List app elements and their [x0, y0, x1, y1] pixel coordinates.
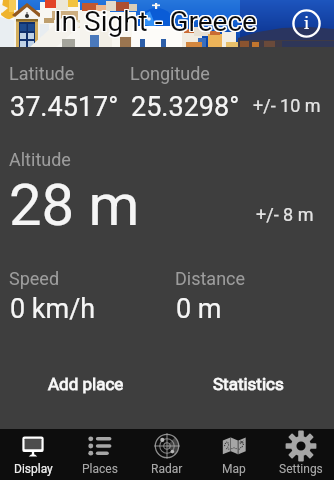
staticText: i — [304, 12, 310, 34]
staticText: In Sight - Greece — [54, 5, 257, 38]
button[interactable]: Statistics — [167, 368, 330, 400]
staticText: In Sight - Greece — [54, 4, 257, 37]
staticText: Settings — [279, 462, 323, 476]
button[interactable]: Places — [66, 429, 133, 480]
staticText: 28 m — [9, 171, 140, 239]
staticText: Latitude — [9, 63, 75, 84]
staticText: +/- 8 m — [256, 204, 314, 225]
button[interactable]: Radar — [133, 429, 200, 480]
button[interactable]: Info — [292, 9, 321, 38]
staticText: +/- 10 m — [253, 95, 321, 116]
staticText: 0 m — [176, 293, 222, 325]
staticText: Distance — [175, 268, 246, 289]
staticText: In Sight - Greece — [55, 6, 258, 39]
button[interactable]: Map — [200, 429, 267, 480]
staticText: 0 km/h — [10, 293, 96, 325]
staticText: In Sight - Greece — [55, 5, 258, 38]
staticText: 37.4517° — [10, 91, 119, 123]
button[interactable]: Display — [0, 429, 66, 480]
staticText: Altitude — [9, 149, 71, 170]
staticText: In Sight - Greece — [53, 6, 256, 39]
staticText: Add place — [48, 374, 124, 394]
staticText: Places — [82, 462, 118, 476]
staticText: Statistics — [213, 374, 284, 394]
staticText: Longitude — [130, 63, 210, 84]
staticText: In Sight - Greece — [54, 6, 257, 39]
staticText: In Sight - Greece — [55, 4, 258, 37]
staticText: Speed — [9, 268, 60, 289]
staticText: In Sight - Greece — [53, 4, 256, 37]
staticText: Radar — [151, 462, 183, 476]
staticText: In Sight - Greece — [53, 5, 256, 38]
button[interactable]: Settings — [267, 429, 334, 480]
staticText: 25.3298° — [131, 91, 240, 123]
button[interactable]: Add place — [4, 368, 167, 400]
staticText: Map — [222, 462, 246, 476]
staticText: Display — [14, 462, 53, 476]
